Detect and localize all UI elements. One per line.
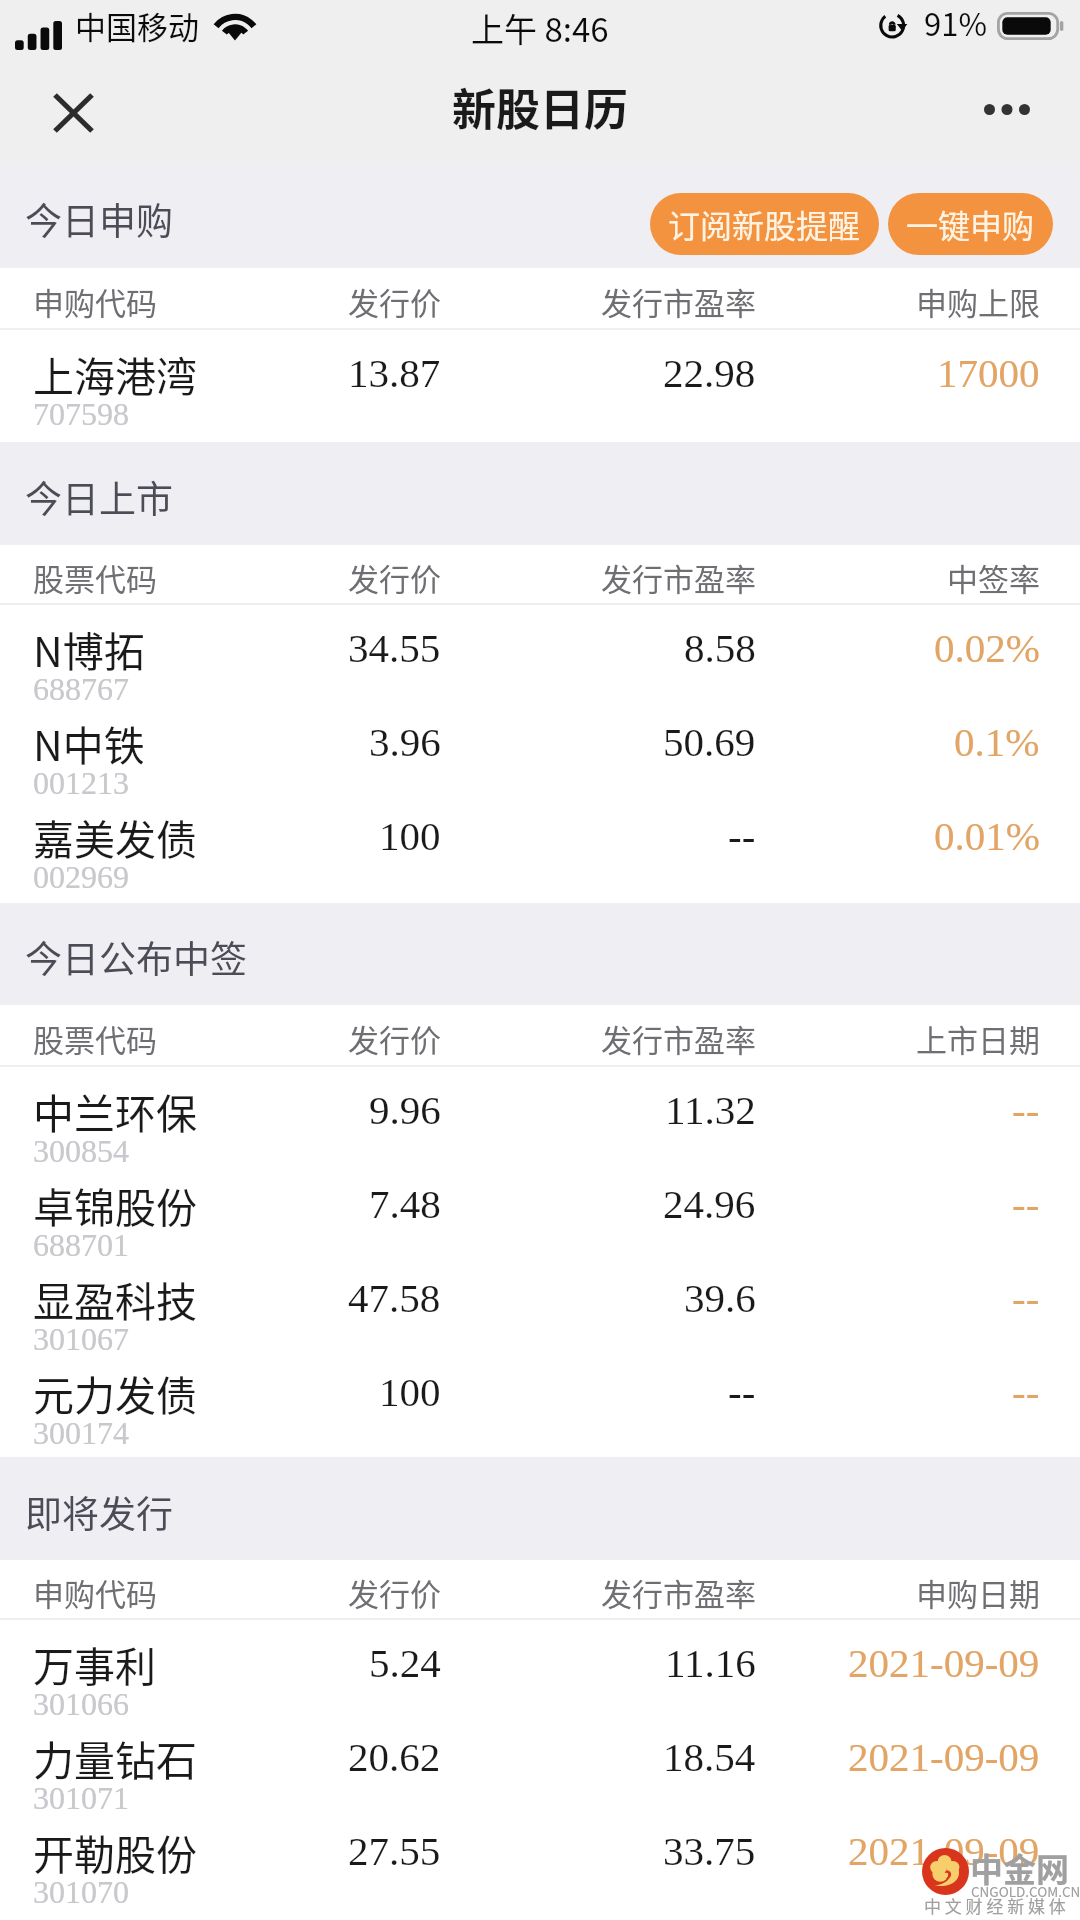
- staticText: 股票代码: [33, 1016, 157, 1061]
- staticText: 上海港湾: [33, 344, 197, 403]
- staticText: CNGOLD.COM.CN: [971, 1881, 1080, 1901]
- staticText: 中兰环保: [33, 1081, 197, 1140]
- staticText: 24.96: [663, 1181, 756, 1226]
- staticText: 8.58: [684, 625, 756, 670]
- staticText: 发行市盈率: [601, 555, 756, 600]
- staticText: 0.02%: [934, 625, 1040, 670]
- button[interactable]: More options: [962, 79, 1052, 139]
- staticText: 中金网: [970, 1844, 1069, 1892]
- button[interactable]: 一键申购: [888, 193, 1053, 255]
- staticText: 申购上限: [916, 279, 1040, 324]
- button[interactable]: 订阅新股提醒: [650, 193, 879, 255]
- staticText: 0.1%: [954, 719, 1040, 764]
- button[interactable]: [0, 1619, 1080, 1713]
- staticText: 27.55: [348, 1828, 441, 1873]
- staticText: 发行价: [348, 1570, 441, 1615]
- staticText: 7.48: [369, 1181, 441, 1226]
- staticText: 47.58: [348, 1275, 441, 1320]
- staticText: 开勒股份: [33, 1822, 197, 1881]
- staticText: 发行市盈率: [601, 1016, 756, 1061]
- staticText: 即将发行: [25, 1485, 173, 1539]
- button[interactable]: [0, 1254, 1080, 1348]
- staticText: 2021-09-09: [848, 1828, 1040, 1873]
- staticText: 33.75: [663, 1828, 756, 1873]
- button[interactable]: [0, 1348, 1080, 1442]
- staticText: 发行价: [348, 279, 441, 324]
- staticText: 2021-09-09: [848, 1640, 1040, 1685]
- staticText: 一键申购: [906, 201, 1035, 247]
- staticText: 新股日历: [452, 75, 628, 139]
- staticText: 订阅新股提醒: [668, 201, 861, 247]
- staticText: --: [728, 1369, 756, 1414]
- staticText: 91%: [924, 0, 987, 45]
- staticText: 002969: [33, 859, 129, 894]
- staticText: 股票代码: [33, 555, 157, 600]
- staticText: 17000: [937, 350, 1040, 395]
- staticText: 嘉美发债: [33, 807, 197, 866]
- staticText: 301066: [33, 1686, 129, 1721]
- staticText: 申购代码: [33, 1570, 157, 1615]
- staticText: 18.54: [663, 1734, 756, 1779]
- staticText: 22.98: [663, 350, 756, 395]
- button[interactable]: [0, 698, 1080, 792]
- button[interactable]: [0, 1066, 1080, 1160]
- staticText: 显盈科技: [33, 1269, 197, 1328]
- staticText: 发行价: [348, 555, 441, 600]
- staticText: --: [1012, 1087, 1040, 1132]
- staticText: 力量钻石: [33, 1728, 197, 1787]
- staticText: 3.96: [369, 719, 441, 764]
- staticText: 001213: [33, 765, 129, 800]
- staticText: 11.32: [665, 1087, 756, 1132]
- staticText: 301067: [33, 1321, 129, 1356]
- staticText: 申购日期: [916, 1570, 1040, 1615]
- staticText: 2021-09-09: [848, 1734, 1040, 1779]
- button[interactable]: [0, 1807, 1080, 1901]
- staticText: 发行市盈率: [601, 279, 756, 324]
- staticText: 今日上市: [25, 470, 173, 524]
- staticText: 今日公布中签: [25, 930, 247, 984]
- staticText: 0.01%: [934, 813, 1040, 858]
- staticText: --: [1012, 1275, 1040, 1320]
- staticText: 中 文 财 经 新 媒 体: [924, 1893, 1066, 1918]
- staticText: 上午 8:46: [471, 4, 609, 52]
- button[interactable]: Close: [36, 75, 111, 150]
- staticText: N博拓: [33, 619, 145, 678]
- staticText: 300174: [33, 1415, 129, 1450]
- staticText: N中铁: [33, 713, 145, 772]
- staticText: 100: [379, 813, 441, 858]
- staticText: 13.87: [348, 350, 441, 395]
- staticText: 万事利: [33, 1634, 156, 1693]
- staticText: 上市日期: [916, 1016, 1040, 1061]
- button[interactable]: [0, 1160, 1080, 1254]
- staticText: 34.55: [348, 625, 441, 670]
- staticText: 688767: [33, 671, 129, 706]
- staticText: --: [1012, 1369, 1040, 1414]
- button[interactable]: [0, 792, 1080, 886]
- button[interactable]: [0, 329, 1080, 423]
- button[interactable]: [0, 604, 1080, 698]
- staticText: 中签率: [947, 555, 1040, 600]
- staticText: 20.62: [348, 1734, 441, 1779]
- staticText: 元力发债: [33, 1363, 197, 1422]
- staticText: 11.16: [665, 1640, 756, 1685]
- staticText: --: [728, 813, 756, 858]
- staticText: 39.6: [684, 1275, 756, 1320]
- staticText: 300854: [33, 1133, 129, 1168]
- staticText: 707598: [33, 396, 129, 431]
- staticText: 301071: [33, 1780, 129, 1815]
- staticText: 100: [379, 1369, 441, 1414]
- staticText: 卓锦股份: [33, 1175, 197, 1234]
- staticText: 5.24: [369, 1640, 441, 1685]
- staticText: 发行市盈率: [601, 1570, 756, 1615]
- staticText: 发行价: [348, 1016, 441, 1061]
- staticText: 今日申购: [25, 192, 173, 246]
- button[interactable]: [0, 1713, 1080, 1807]
- staticText: 301070: [33, 1874, 129, 1909]
- staticText: 申购代码: [33, 279, 157, 324]
- staticText: 中国移动: [75, 3, 199, 48]
- staticText: 50.69: [663, 719, 756, 764]
- staticText: --: [1012, 1181, 1040, 1226]
- staticText: 9.96: [369, 1087, 441, 1132]
- staticText: 688701: [33, 1227, 129, 1262]
